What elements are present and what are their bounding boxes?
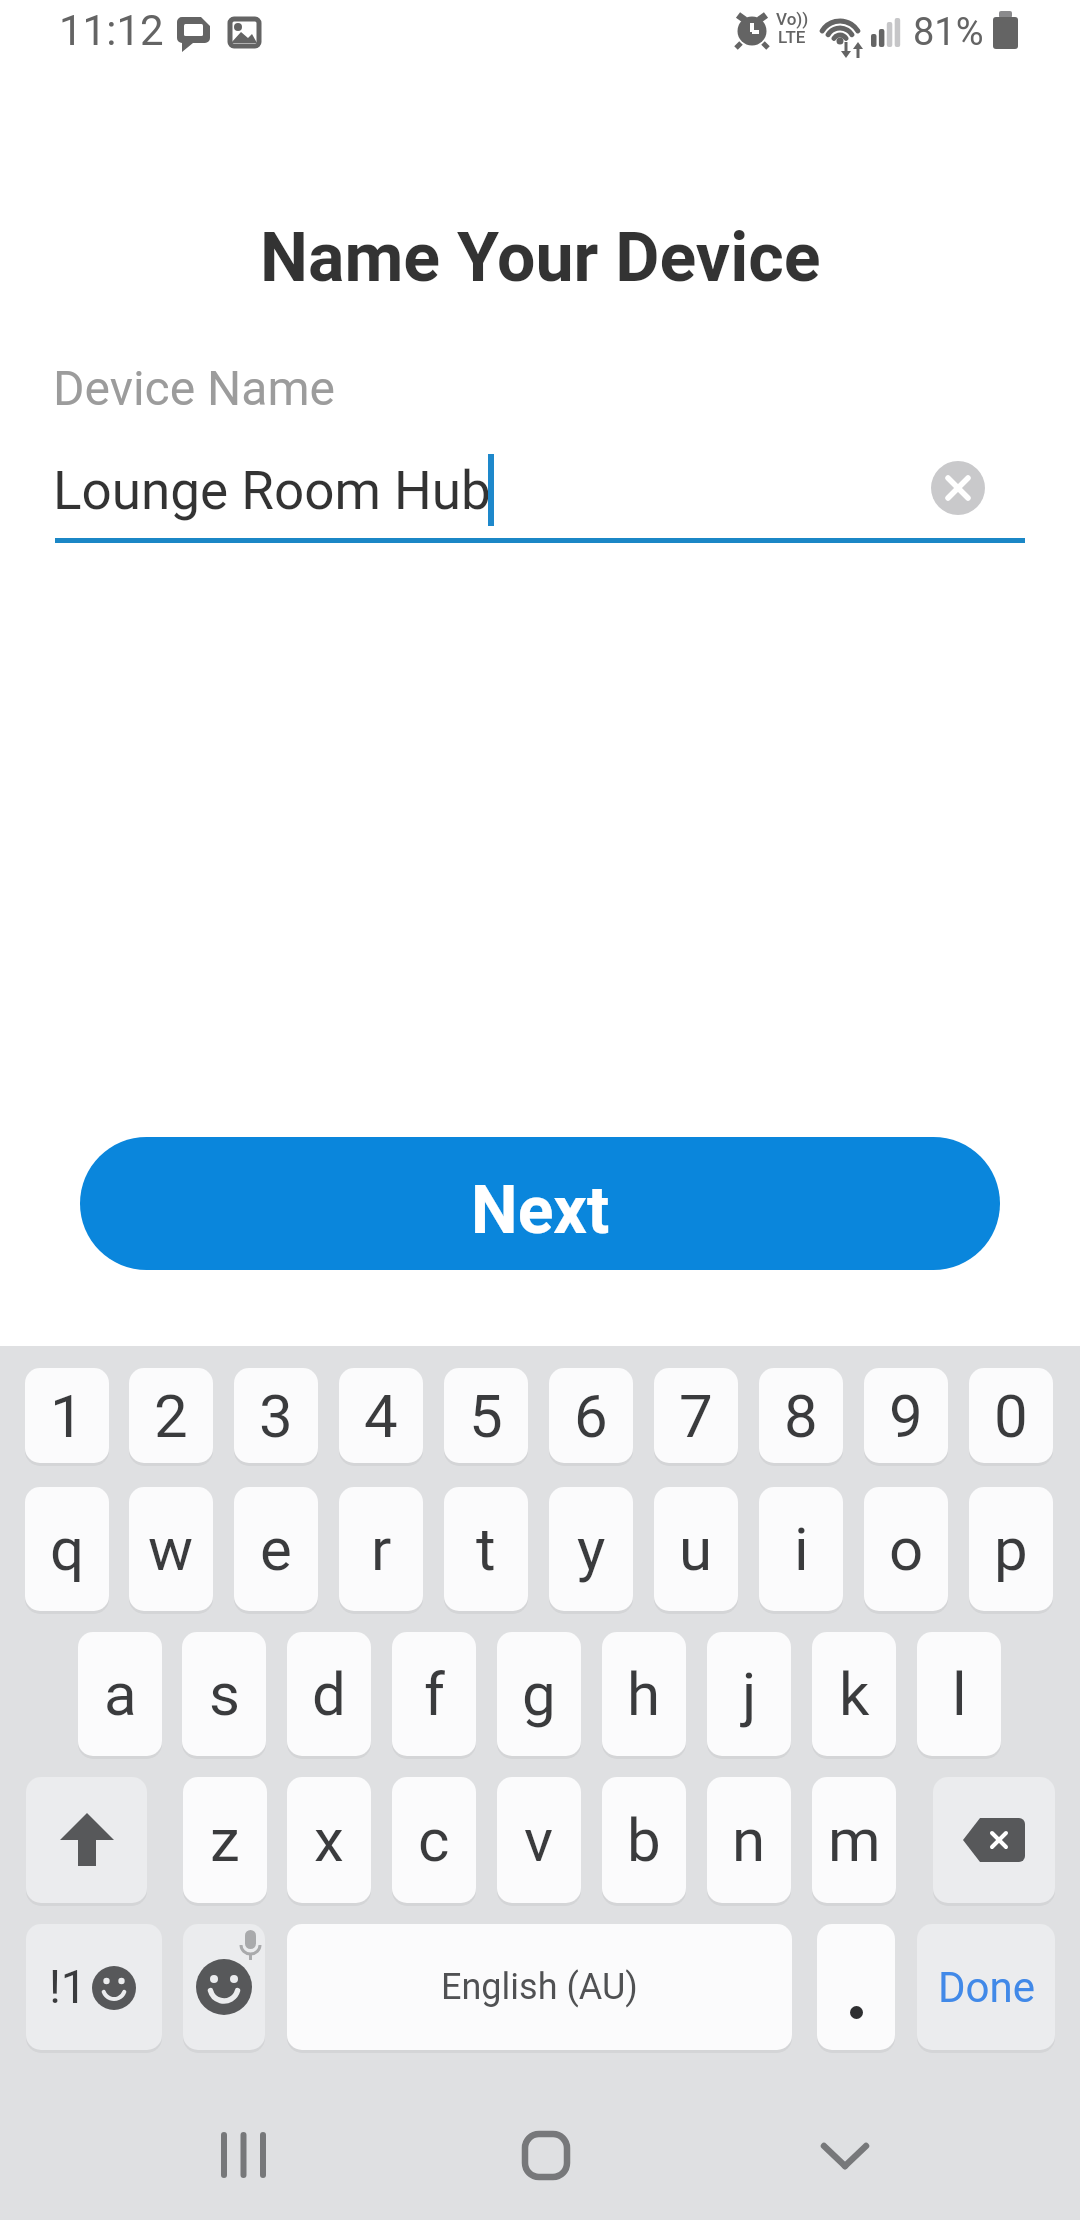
button[interactable]: i [759, 1487, 843, 1611]
staticText: f [424, 1659, 445, 1729]
staticText: English (AU) [441, 1966, 638, 2008]
staticText: w [148, 1514, 194, 1584]
button[interactable]: j [707, 1632, 791, 1756]
button[interactable] [26, 1777, 147, 1903]
staticText: i [794, 1514, 809, 1584]
button[interactable]: 0 [969, 1368, 1053, 1463]
button[interactable] [817, 1924, 895, 2050]
button[interactable] [931, 461, 985, 515]
button[interactable]: n [707, 1777, 791, 1903]
staticText: y [577, 1514, 606, 1584]
staticText: Next [471, 1172, 610, 1249]
button[interactable]: q [25, 1487, 109, 1611]
staticText: 81% [913, 10, 984, 55]
button[interactable]: u [654, 1487, 738, 1611]
staticText: 8 [784, 1381, 818, 1451]
staticText: Device Name [53, 360, 335, 416]
button[interactable]: d [287, 1632, 371, 1756]
button[interactable]: k [812, 1632, 896, 1756]
staticText: 0 [994, 1381, 1028, 1451]
staticText: LTE [778, 27, 806, 47]
button[interactable]: v [497, 1777, 581, 1903]
staticText: m [828, 1805, 881, 1875]
button[interactable]: 8 [759, 1368, 843, 1463]
button[interactable]: r [339, 1487, 423, 1611]
staticText: 4 [364, 1381, 398, 1451]
button[interactable]: t [444, 1487, 528, 1611]
button[interactable]: e [234, 1487, 318, 1611]
staticText: 2 [154, 1381, 188, 1451]
staticText: g [522, 1659, 556, 1729]
button[interactable]: a [78, 1632, 162, 1756]
staticText: u [679, 1514, 713, 1584]
staticText: e [260, 1514, 292, 1584]
button[interactable]: x [287, 1777, 371, 1903]
staticText: c [418, 1805, 450, 1875]
staticText: n [732, 1805, 766, 1875]
button[interactable]: 3 [234, 1368, 318, 1463]
staticText: d [312, 1659, 346, 1729]
staticText: q [50, 1514, 85, 1584]
button[interactable] [26, 1924, 162, 2050]
button[interactable] [933, 1777, 1055, 1903]
button[interactable] [486, 2110, 606, 2205]
button[interactable]: p [969, 1487, 1053, 1611]
staticText: 7 [679, 1381, 713, 1451]
staticText: h [627, 1659, 661, 1729]
staticText: Name Your Device [260, 218, 821, 298]
staticText: 1 [50, 1381, 84, 1451]
button[interactable] [183, 1924, 265, 2050]
button[interactable]: w [129, 1487, 213, 1611]
staticText: t [476, 1514, 496, 1584]
staticText: s [209, 1659, 240, 1729]
staticText: v [524, 1805, 554, 1875]
button[interactable]: f [392, 1632, 476, 1756]
staticText: j [742, 1659, 757, 1729]
button[interactable]: b [602, 1777, 686, 1903]
button[interactable]: 6 [549, 1368, 633, 1463]
staticText: Vo)) [776, 9, 809, 29]
button[interactable]: English (AU) [287, 1924, 792, 2050]
staticText: a [104, 1659, 137, 1729]
staticText: z [210, 1805, 240, 1875]
button[interactable]: o [864, 1487, 948, 1611]
button[interactable]: 2 [129, 1368, 213, 1463]
staticText: !1 [49, 1960, 87, 2014]
staticText: o [889, 1514, 924, 1584]
button[interactable]: m [812, 1777, 896, 1903]
button[interactable]: h [602, 1632, 686, 1756]
staticText: 5 [469, 1381, 503, 1451]
button[interactable]: y [549, 1487, 633, 1611]
button[interactable]: s [182, 1632, 266, 1756]
button[interactable]: c [392, 1777, 476, 1903]
button[interactable]: Done [917, 1924, 1055, 2050]
button[interactable]: g [497, 1632, 581, 1756]
button[interactable] [785, 2110, 905, 2205]
button[interactable]: 4 [339, 1368, 423, 1463]
staticText: l [952, 1659, 967, 1729]
button[interactable]: 5 [444, 1368, 528, 1463]
button[interactable]: 9 [864, 1368, 948, 1463]
staticText: 6 [574, 1381, 608, 1451]
staticText: 9 [889, 1381, 923, 1451]
staticText: 3 [259, 1381, 293, 1451]
staticText: 11:12 [59, 6, 164, 55]
staticText: Done [938, 1963, 1035, 2012]
button[interactable] [40, 440, 1025, 545]
staticText: k [839, 1659, 870, 1729]
button[interactable]: 7 [654, 1368, 738, 1463]
staticText: r [371, 1514, 392, 1584]
staticText: p [994, 1514, 1028, 1584]
staticText: Lounge Room Hub [53, 460, 491, 522]
staticText: x [314, 1805, 344, 1875]
button[interactable]: l [917, 1632, 1001, 1756]
staticText: b [627, 1805, 661, 1875]
button[interactable]: 1 [25, 1368, 109, 1463]
button[interactable]: z [183, 1777, 267, 1903]
button[interactable]: Next [80, 1137, 1000, 1270]
button[interactable] [184, 2110, 304, 2205]
